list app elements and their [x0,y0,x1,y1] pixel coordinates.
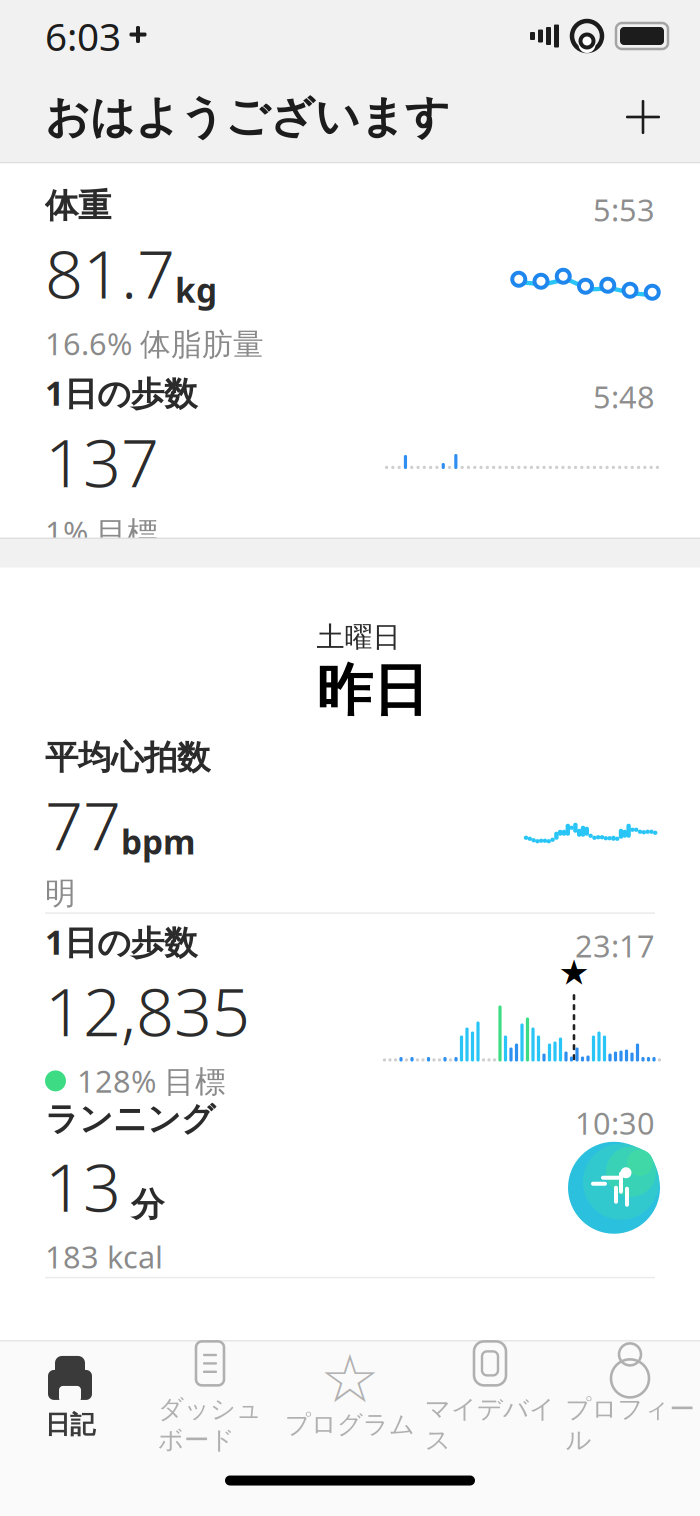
button[interactable]: ダッシュボード [140,1342,280,1452]
staticText: 183 kcal [45,1236,163,1277]
staticText: 12,835 [45,966,250,1054]
staticText: bpm [121,819,196,864]
staticText: 6:03 [45,10,121,62]
staticText: 昨日 [316,656,428,725]
staticText: 81.7 [45,228,175,317]
staticText: プロフィール [565,1393,694,1456]
staticText: マイデバイス [425,1393,555,1456]
staticText: ランニング [45,1099,215,1140]
staticText: 10:30 [575,1102,655,1143]
staticText: 128% 目標 [77,1060,226,1101]
staticText: 5:53 [593,189,655,230]
staticText: 137 [45,417,159,505]
staticText: 1% 目標 [45,511,158,552]
button[interactable]: ☆ [280,1342,420,1452]
staticText: 土曜日 [316,620,400,654]
staticText: 16.6% 体脂肪量 [45,323,264,364]
staticText: ★ [558,953,589,992]
staticText: 23:17 [575,925,655,966]
staticText: プログラム [285,1409,415,1440]
button[interactable]: 追加 [612,86,674,148]
staticText: 平均心拍数 [45,737,210,778]
staticText: 日記 [45,1409,95,1440]
staticText: 分 [121,1184,164,1225]
staticText: 1日の歩数 [45,920,197,964]
staticText: 13 [45,1142,121,1230]
staticText: おはようございます [45,90,450,144]
staticText: ☆ [320,1341,380,1417]
button[interactable]: 日記 [0,1342,140,1452]
staticText: 77 [45,780,121,869]
staticText: 明 [45,875,76,912]
staticText: 5:48 [593,376,655,417]
staticText: ダッシュボード [158,1393,262,1456]
button[interactable]: プロフィール [560,1342,700,1452]
staticText: 1日の歩数 [45,371,197,415]
staticText: 体重 [45,185,111,226]
button[interactable]: マイデバイス [420,1342,560,1452]
staticText: kg [175,268,217,312]
